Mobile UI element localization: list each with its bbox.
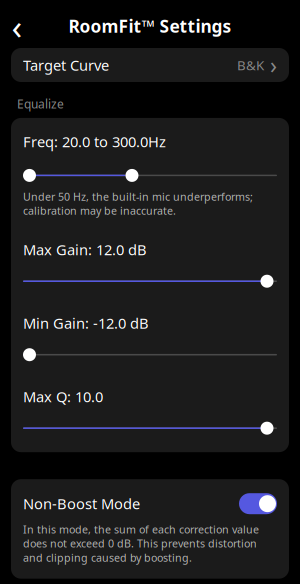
button[interactable]: Non-Boost Mode toggle [239, 493, 277, 514]
staticText: RoomFit™ Settings [68, 14, 231, 37]
staticText: Equalize [17, 96, 64, 112]
staticText: Target Curve [23, 55, 109, 75]
staticText: Freq: 20.0 to 300.0Hz [23, 132, 166, 151]
staticText: Min Gain: -12.0 dB [23, 313, 149, 333]
staticText: Max Q: 10.0 [23, 387, 103, 406]
staticText: Under 50 Hz, the built-in mic underperfo… [23, 189, 253, 218]
button[interactable]: Target Curve [11, 48, 289, 82]
staticText: In this mode, the sum of each correction… [23, 522, 259, 565]
staticText: B&K [237, 56, 264, 74]
staticText: ‹ [11, 3, 22, 49]
button[interactable]: Back [0, 9, 34, 43]
staticText: Non-Boost Mode [23, 494, 140, 513]
staticText: › [264, 50, 277, 80]
staticText: Max Gain: 12.0 dB [23, 240, 147, 259]
